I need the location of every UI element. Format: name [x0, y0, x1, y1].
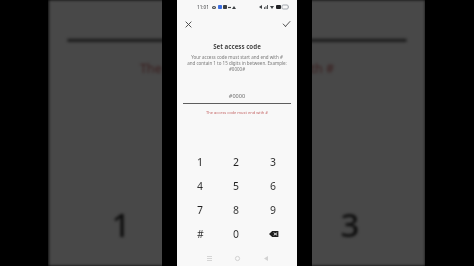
button[interactable]: 6 — [293, 262, 410, 266]
staticText: 7 — [197, 203, 204, 217]
button[interactable]: 6 — [255, 174, 292, 198]
button[interactable]: 3 — [293, 186, 410, 262]
button[interactable]: Recent apps — [202, 251, 216, 265]
button[interactable]: Home — [230, 251, 244, 265]
staticText: 1 — [197, 155, 204, 169]
staticText: 3 — [341, 202, 363, 246]
button[interactable]: 8 — [218, 198, 255, 222]
button[interactable]: 0 — [218, 222, 255, 246]
staticText: #0000 — [183, 92, 291, 100]
staticText: 2 — [233, 155, 240, 169]
staticText: The access code must end with # — [177, 110, 297, 115]
button[interactable]: 4 — [182, 174, 218, 198]
staticText: 1 — [111, 202, 133, 246]
staticText: #0000 — [67, 4, 406, 29]
staticText: # — [197, 227, 204, 241]
staticText: 4 — [197, 179, 204, 193]
staticText: Your access code must start and end with… — [179, 54, 295, 72]
button[interactable]: 9 — [255, 198, 292, 222]
button[interactable]: #0000 — [67, 0, 406, 42]
button[interactable]: 1 — [64, 186, 177, 262]
button[interactable]: Back — [259, 251, 273, 265]
staticText: 3 — [270, 155, 277, 169]
staticText: 9 — [270, 203, 277, 217]
button[interactable]: # — [182, 222, 218, 246]
staticText: 6 — [270, 179, 277, 193]
button[interactable]: 1 — [182, 150, 218, 174]
staticText: Set access code — [177, 42, 297, 50]
staticText: 11:01 — [197, 4, 209, 10]
button[interactable]: #0000 — [183, 89, 291, 104]
button[interactable]: 7 — [182, 198, 218, 222]
button[interactable]: Backspace — [255, 222, 292, 246]
button[interactable]: 4 — [64, 262, 177, 266]
button[interactable]: 5 — [218, 174, 255, 198]
staticText: The access code must end with # — [49, 61, 425, 76]
button[interactable]: 2 — [218, 150, 255, 174]
button[interactable]: Confirm — [279, 17, 293, 31]
staticText: 8 — [233, 203, 240, 217]
staticText: 0 — [233, 227, 240, 241]
button[interactable]: 3 — [255, 150, 292, 174]
staticText: 2 — [224, 202, 246, 246]
staticText: 5 — [233, 179, 240, 193]
button[interactable]: 2 — [177, 186, 293, 262]
button[interactable]: Close — [181, 17, 195, 31]
